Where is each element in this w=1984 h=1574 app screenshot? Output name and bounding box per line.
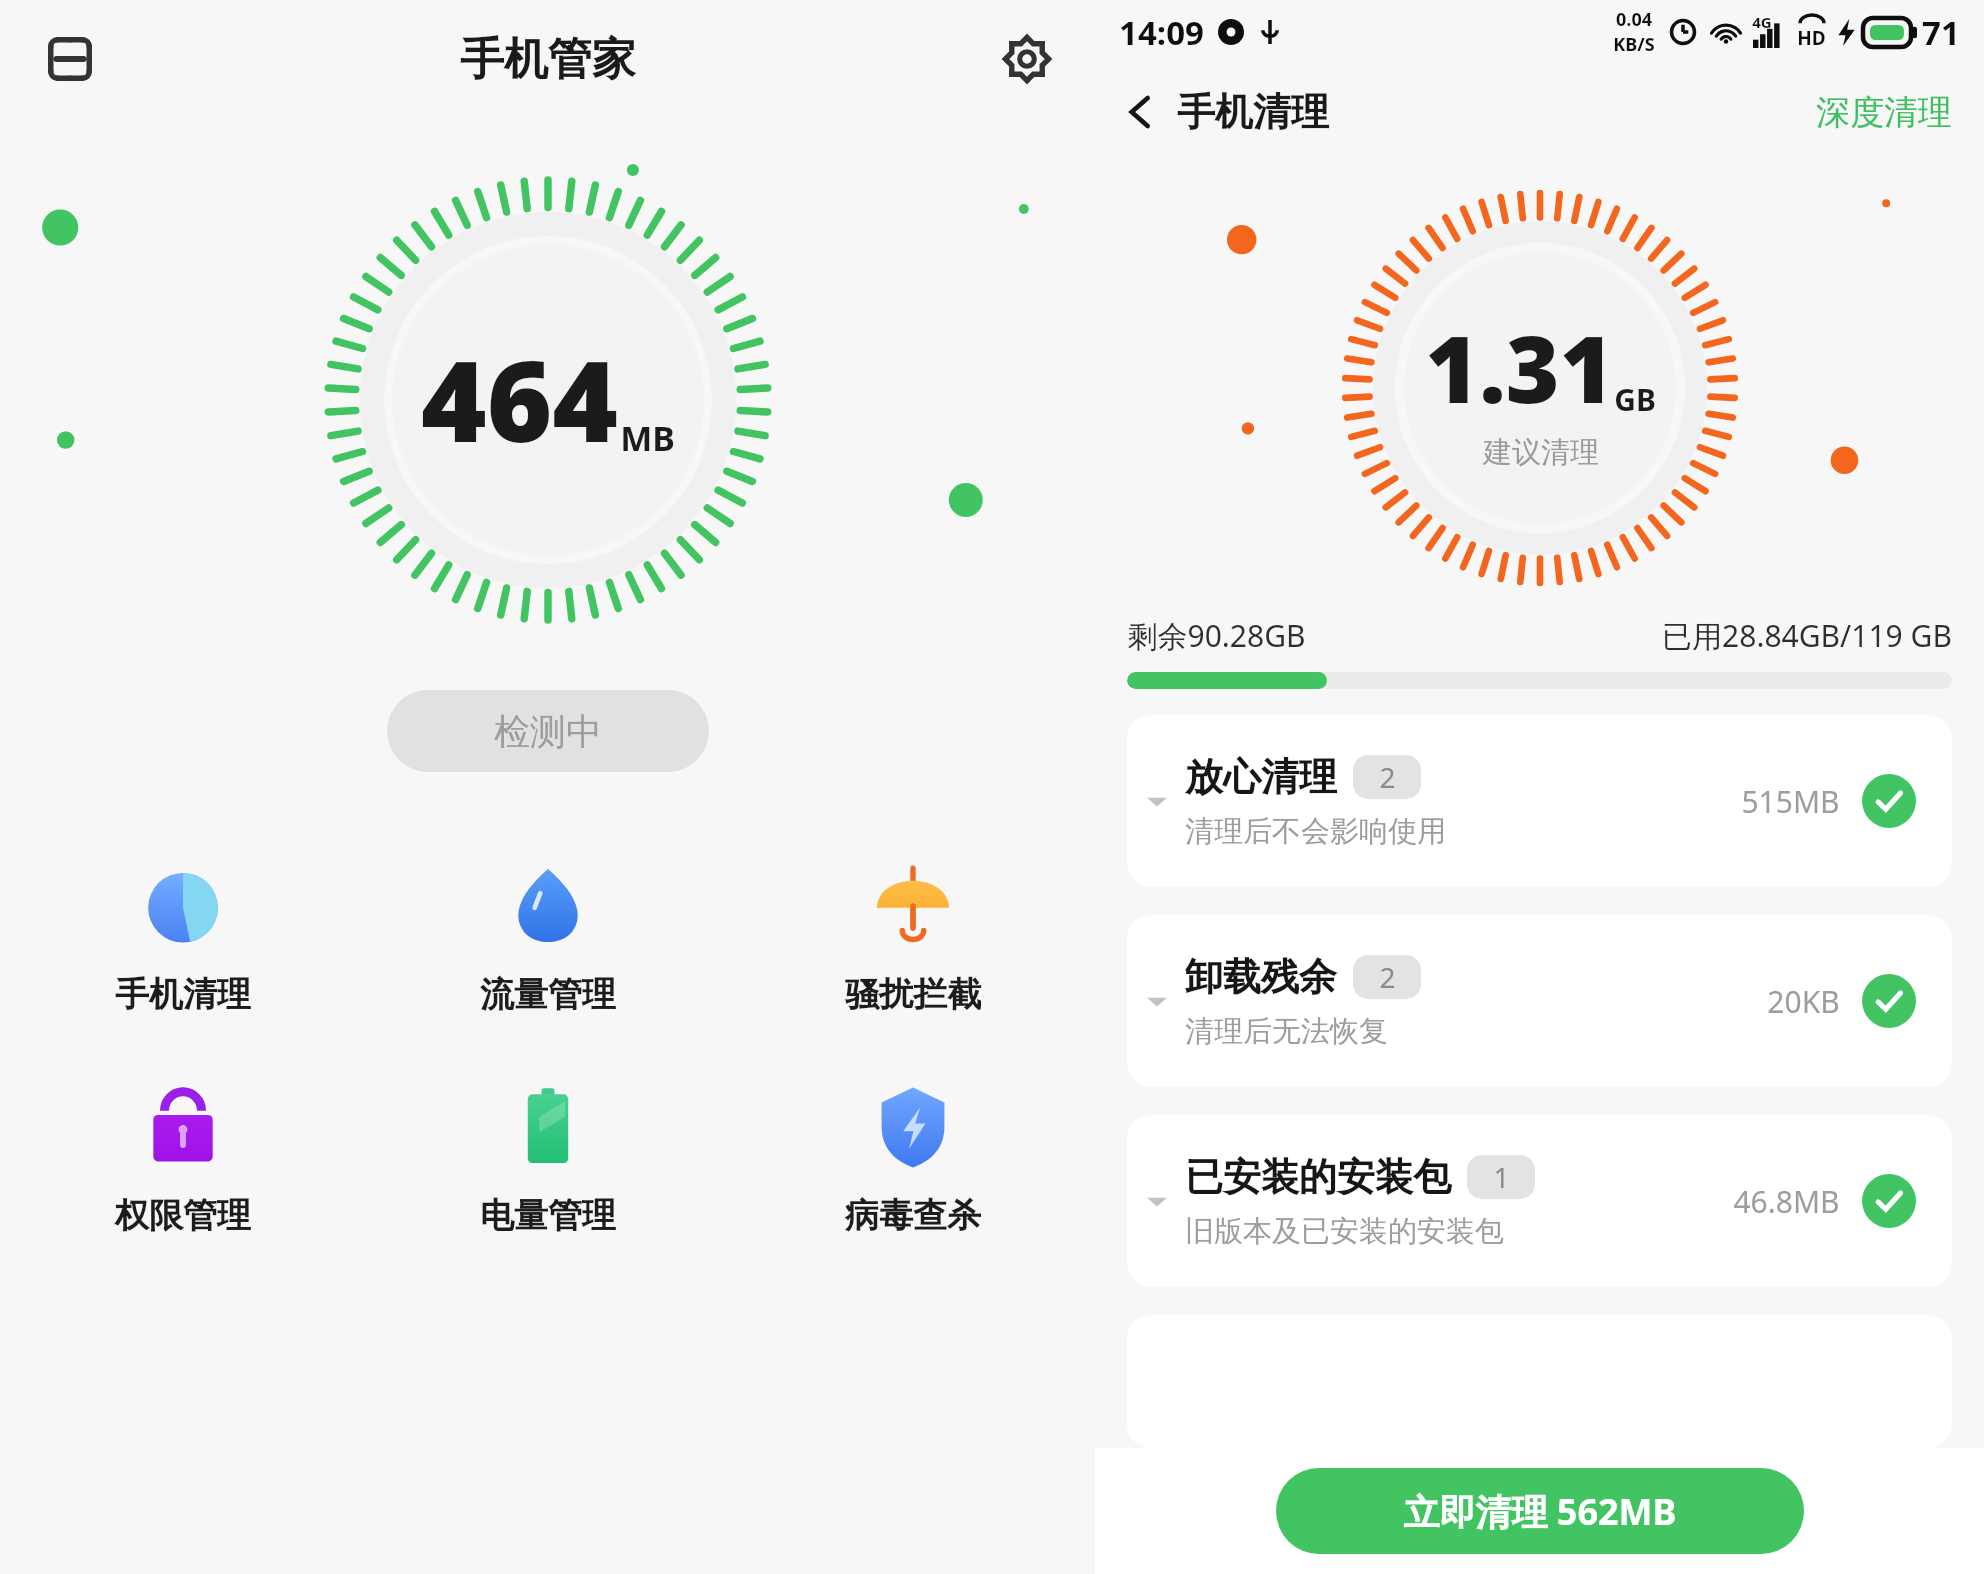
staticText: 旧版本及已安装的安装包 bbox=[1185, 1213, 1504, 1250]
button[interactable]: 骚扰拦截 bbox=[730, 855, 1095, 1024]
button[interactable]: 立即清理 562MB bbox=[1276, 1468, 1804, 1554]
staticText: 病毒查杀 bbox=[845, 1194, 981, 1237]
staticText: 建议清理 bbox=[1483, 434, 1599, 471]
staticText: 46.8MB bbox=[1733, 1181, 1840, 1222]
button[interactable]: 已安装的安装包 bbox=[1127, 1115, 1952, 1287]
staticText: 深度清理 bbox=[1816, 91, 1952, 134]
staticText: 1.31 bbox=[1425, 305, 1614, 430]
other: Back bbox=[1111, 83, 1169, 141]
staticText: 手机清理 bbox=[115, 973, 251, 1016]
staticText: 手机清理 bbox=[1177, 88, 1329, 136]
staticText: 已用28.84GB/119 GB bbox=[1662, 615, 1952, 656]
staticText: 464 bbox=[421, 322, 618, 475]
staticText: 权限管理 bbox=[115, 1194, 251, 1237]
button[interactable]: Selected bbox=[1862, 774, 1916, 828]
staticText: 71 bbox=[1922, 10, 1960, 55]
staticText: 流量管理 bbox=[480, 973, 616, 1016]
staticText: 剩余90.28GB bbox=[1127, 615, 1306, 656]
button[interactable]: 流量管理 bbox=[365, 855, 730, 1024]
button[interactable]: 手机清理 bbox=[0, 855, 365, 1024]
button[interactable]: 放心清理 bbox=[1127, 715, 1952, 887]
button[interactable]: 卸载残余 bbox=[1127, 915, 1952, 1087]
staticText: 放心清理 bbox=[1185, 753, 1337, 801]
staticText: 4G bbox=[1752, 12, 1772, 32]
button[interactable]: Selected bbox=[1862, 1174, 1916, 1228]
button[interactable]: 深度清理 bbox=[1810, 85, 1958, 140]
button[interactable]: Back bbox=[1111, 83, 1339, 141]
staticText: 清理后无法恢复 bbox=[1185, 1013, 1388, 1050]
button[interactable]: Scan bbox=[32, 21, 108, 97]
button[interactable]: Selected bbox=[1862, 974, 1916, 1028]
staticText: MB bbox=[620, 415, 675, 461]
staticText: 0.04 bbox=[1616, 7, 1652, 32]
button[interactable]: Settings bbox=[989, 21, 1065, 97]
staticText: 1 bbox=[1493, 1158, 1510, 1196]
staticText: HD bbox=[1797, 25, 1826, 51]
button[interactable]: 权限管理 bbox=[0, 1076, 365, 1245]
staticText: 515MB bbox=[1741, 781, 1840, 822]
staticText: 电量管理 bbox=[480, 1194, 616, 1237]
staticText: 手机管家 bbox=[460, 32, 636, 87]
staticText: 已安装的安装包 bbox=[1185, 1153, 1451, 1201]
staticText: 卸载残余 bbox=[1185, 953, 1337, 1001]
button[interactable]: 病毒查杀 bbox=[730, 1076, 1095, 1245]
staticText: 清理后不会影响使用 bbox=[1185, 813, 1446, 850]
staticText: GB bbox=[1614, 379, 1656, 420]
staticText: 2 bbox=[1379, 758, 1396, 796]
button[interactable]: 电量管理 bbox=[365, 1076, 730, 1245]
staticText: 2 bbox=[1379, 958, 1396, 996]
staticText: 14:09 bbox=[1119, 10, 1204, 55]
button[interactable]: 检测中 bbox=[387, 690, 709, 772]
staticText: 20KB bbox=[1767, 981, 1840, 1022]
staticText: KB/S bbox=[1613, 32, 1655, 57]
staticText: 骚扰拦截 bbox=[845, 973, 981, 1016]
staticText: 检测中 bbox=[494, 709, 602, 754]
staticText: 立即清理 562MB bbox=[1403, 1487, 1677, 1536]
